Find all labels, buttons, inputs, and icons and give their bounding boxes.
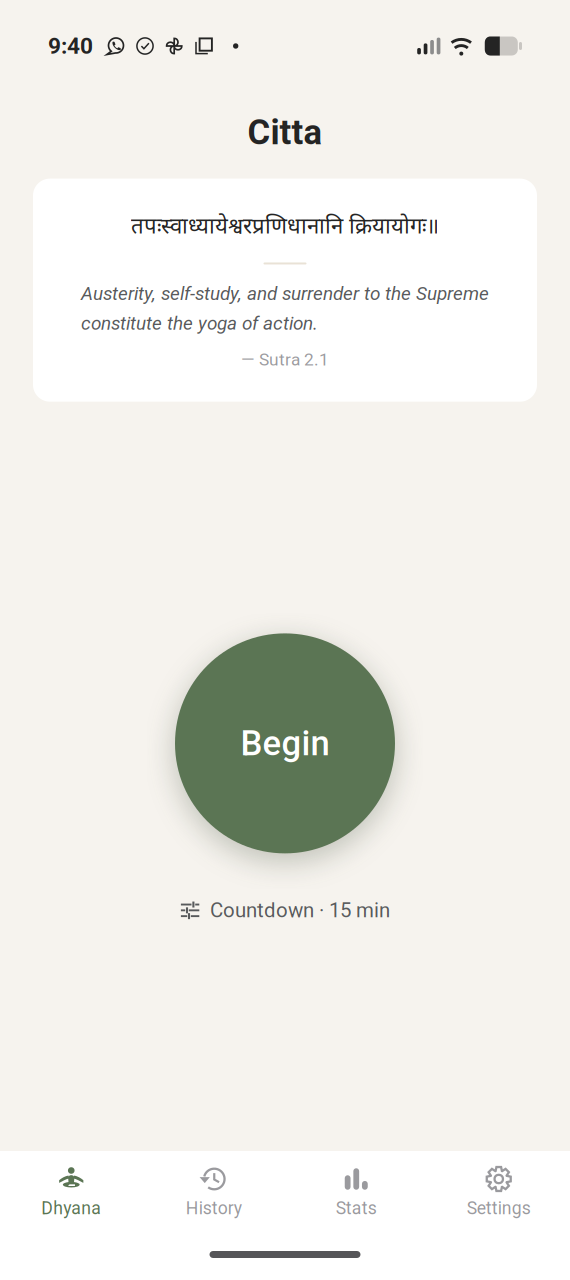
button[interactable]: History	[142, 1151, 285, 1229]
staticText: Stats	[336, 1198, 377, 1219]
button[interactable]: Begin	[175, 633, 395, 853]
staticText: History	[186, 1198, 242, 1219]
staticText: — Sutra 2.1	[241, 349, 329, 370]
staticText: Dhyana	[41, 1198, 101, 1219]
staticText: Begin	[240, 723, 329, 764]
staticText: तपःस्वाध्यायेश्वरप्रणिधानानि क्रियायोगः॥	[131, 214, 439, 242]
button[interactable]: Stats	[285, 1151, 427, 1229]
staticText: Settings	[467, 1198, 531, 1219]
button[interactable]: Dhyana	[0, 1151, 142, 1229]
staticText: Austerity, self-study, and surrender to …	[81, 282, 489, 334]
staticText: Citta	[247, 112, 322, 153]
staticText: 9:40	[48, 33, 93, 59]
staticText: Countdown · 15 min	[210, 898, 390, 922]
button[interactable]: Countdown · 15 min	[180, 853, 390, 932]
button[interactable]: Settings	[427, 1151, 570, 1229]
